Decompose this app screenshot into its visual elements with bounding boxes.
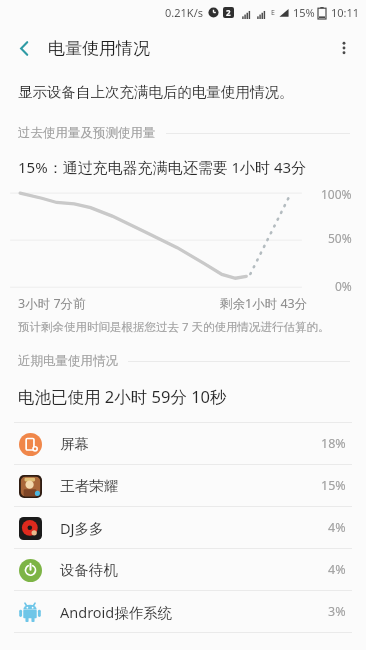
staticText: 18% [321, 435, 346, 452]
staticText: 4% [328, 561, 346, 578]
staticText: Android操作系统 [60, 602, 173, 622]
staticText: 过去使用量及预测使用量 [18, 125, 156, 141]
button[interactable]: Back [0, 25, 48, 71]
button[interactable]: 屏幕 [0, 423, 366, 464]
staticText: 100% [321, 186, 352, 202]
staticText: 屏幕 [60, 435, 89, 453]
staticText: 15% [321, 477, 346, 494]
staticText: 3小时 7分前 [18, 295, 86, 312]
staticText: 0.21K/s [165, 5, 203, 20]
staticText: 2 [226, 7, 231, 18]
button[interactable]: DJ多多 [0, 507, 366, 548]
staticText: 近期电量使用情况 [18, 353, 118, 369]
staticText: 显示设备自上次充满电后的电量使用情况。 [18, 83, 294, 101]
button[interactable]: Android操作系统 [0, 591, 366, 632]
staticText: 电量使用情况 [48, 38, 150, 59]
button[interactable]: 设备待机 [0, 549, 366, 590]
staticText: DJ多多 [60, 518, 104, 538]
staticText: 50% [328, 230, 352, 246]
staticText: 4% [328, 519, 346, 536]
staticText: 15% [293, 5, 315, 20]
staticText: 3% [328, 603, 346, 620]
staticText: 10:11 [331, 5, 360, 20]
staticText: 设备待机 [60, 561, 118, 579]
staticText: 王者荣耀 [60, 477, 118, 495]
staticText: 预计剩余使用时间是根据您过去 7 天的使用情况进行估算的。 [18, 319, 330, 335]
staticText: 剩余1小时 43分 [220, 295, 308, 312]
staticText: 15%：通过充电器充满电还需要 1小时 43分 [18, 157, 307, 177]
button[interactable]: More options [322, 25, 366, 71]
button[interactable]: 王者荣耀 [0, 465, 366, 506]
staticText: 电池已使用 2小时 59分 10秒 [18, 385, 227, 408]
staticText: 0% [335, 278, 352, 294]
staticText: E [271, 8, 275, 18]
